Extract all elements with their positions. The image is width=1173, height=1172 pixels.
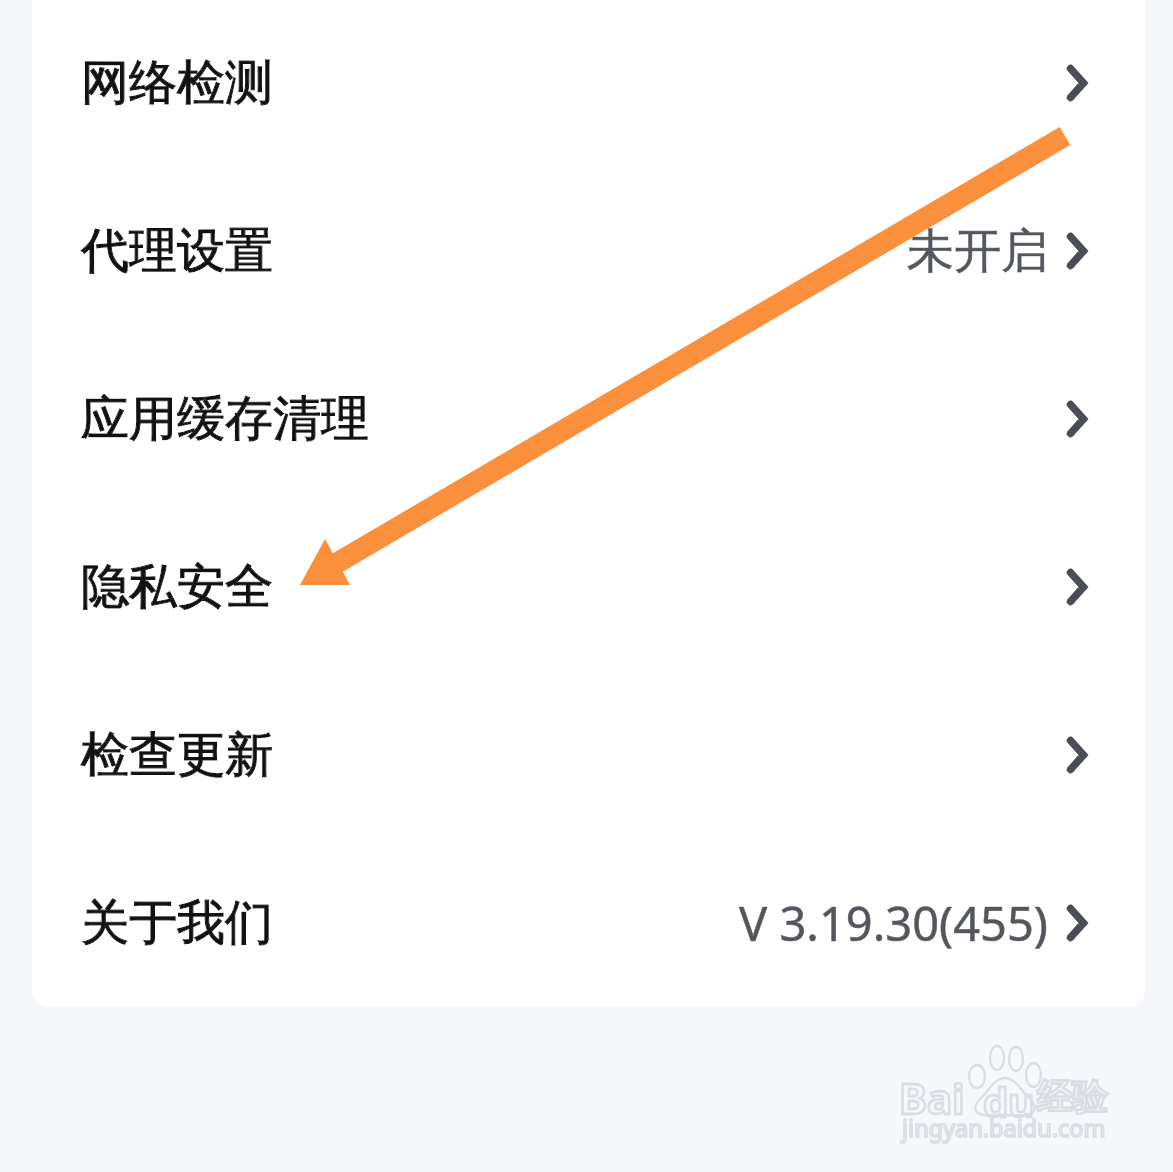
button[interactable]: 关于我们, V 3.19.30(455) — [32, 839, 1145, 1007]
other: 关于我们 — [1064, 901, 1090, 945]
other: 代理设置 — [1064, 229, 1090, 273]
other: 检查更新 — [1064, 733, 1090, 777]
button[interactable]: 网络检测 — [32, 0, 1145, 167]
button[interactable]: 隐私安全 — [32, 503, 1145, 671]
button[interactable]: 检查更新 — [32, 671, 1145, 839]
other: 网络检测 — [1064, 61, 1090, 105]
other: 应用缓存清理 — [1064, 397, 1090, 441]
button[interactable]: 应用缓存清理 — [32, 335, 1145, 503]
button[interactable]: 代理设置, 未开启 — [32, 167, 1145, 335]
other: 隐私安全 — [1064, 565, 1090, 609]
